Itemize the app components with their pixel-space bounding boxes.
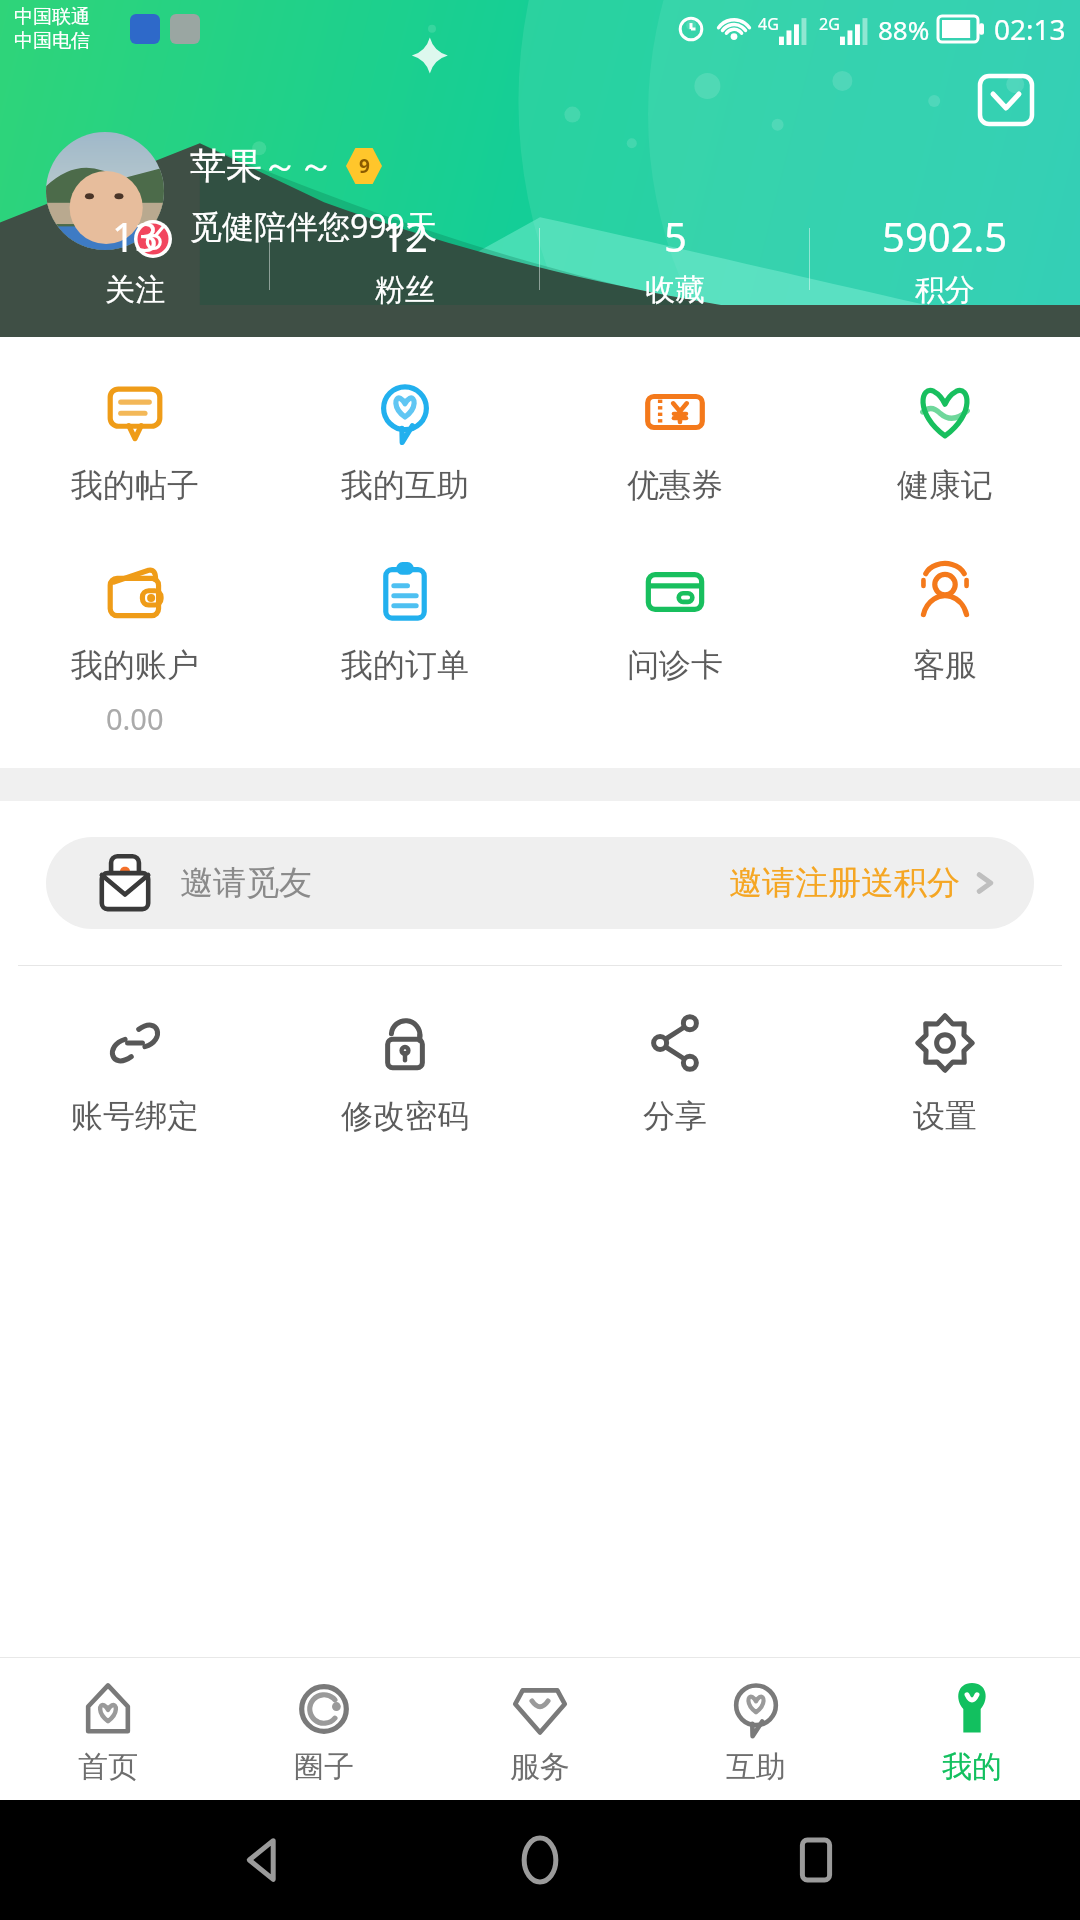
staticText: 邀请注册送积分	[729, 862, 960, 904]
staticText: 邀请觅友	[180, 862, 312, 904]
button[interactable]: 客服	[810, 561, 1080, 685]
staticText: 粉丝	[375, 271, 435, 309]
staticText: 健康记	[897, 465, 993, 505]
staticText: 关注	[105, 271, 165, 309]
staticText: 问诊卡	[627, 645, 723, 685]
staticText: 5	[664, 209, 687, 263]
staticText: 0.00	[106, 699, 164, 738]
button[interactable]: Recents	[783, 1827, 849, 1893]
button[interactable]: 5902.5	[810, 209, 1080, 309]
staticText: 积分	[915, 271, 975, 309]
button[interactable]: 健康记	[810, 381, 1080, 505]
staticText: 圈子	[294, 1748, 354, 1786]
button[interactable]: 13	[0, 209, 270, 309]
staticText: 首页	[78, 1748, 138, 1786]
staticText: 收藏	[645, 271, 705, 309]
staticText: 4G	[758, 13, 779, 35]
staticText: 中国联通	[14, 5, 90, 29]
staticText: 88%	[878, 12, 930, 47]
staticText: 互助	[726, 1748, 786, 1786]
staticText: 9	[359, 153, 370, 179]
staticText: 我的互助	[341, 465, 469, 505]
staticText: 服务	[510, 1748, 570, 1786]
staticText: 我的	[942, 1748, 1002, 1786]
button[interactable]: Home	[507, 1827, 573, 1893]
button[interactable]: 服务	[432, 1678, 648, 1786]
staticText: 我的订单	[341, 645, 469, 685]
button[interactable]: Back	[231, 1827, 297, 1893]
staticText: 苹果～～	[190, 143, 334, 188]
button[interactable]: 修改密码	[270, 1012, 540, 1136]
staticText: 设置	[913, 1096, 977, 1136]
staticText: 分享	[643, 1096, 707, 1136]
button[interactable]: 分享	[540, 1012, 810, 1136]
staticText: 优惠券	[627, 465, 723, 505]
button[interactable]: 我的帖子	[0, 381, 270, 505]
button[interactable]: 问诊卡	[540, 561, 810, 685]
staticText: 账号绑定	[71, 1096, 199, 1136]
staticText: 我的帖子	[71, 465, 199, 505]
button[interactable]: 我的账户	[0, 561, 270, 738]
button[interactable]: 我的	[864, 1678, 1080, 1786]
staticText: 中国电信	[14, 29, 90, 53]
button[interactable]: 苹果～～	[46, 132, 437, 258]
button[interactable]: 5	[540, 209, 810, 309]
staticText: 客服	[913, 645, 977, 685]
button[interactable]: 优惠券	[540, 381, 810, 505]
button[interactable]: 我的订单	[270, 561, 540, 685]
staticText: 5902.5	[882, 209, 1008, 263]
button[interactable]: 邀请觅友	[46, 837, 1034, 929]
staticText: 13	[112, 209, 158, 263]
button[interactable]: 账号绑定	[0, 1012, 270, 1136]
staticText: 02:13	[994, 10, 1066, 48]
button[interactable]: 互助	[648, 1678, 864, 1786]
button[interactable]: 首页	[0, 1678, 216, 1786]
button[interactable]: 12	[270, 209, 540, 309]
button[interactable]: 圈子	[216, 1678, 432, 1786]
staticText: 觅健陪伴您999天	[190, 204, 437, 248]
button[interactable]: Collapse	[978, 74, 1034, 126]
staticText: 2G	[819, 13, 840, 35]
staticText: 12	[382, 209, 428, 263]
staticText: 我的账户	[71, 645, 199, 685]
staticText: 修改密码	[341, 1096, 469, 1136]
button[interactable]: 设置	[810, 1012, 1080, 1136]
button[interactable]: 我的互助	[270, 381, 540, 505]
